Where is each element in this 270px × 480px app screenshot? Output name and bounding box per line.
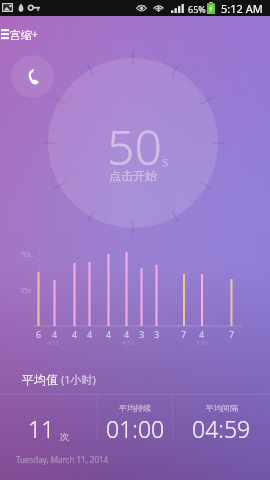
staticText: Tuesday, March 11, 2014 [16,454,109,465]
button[interactable]: Menu [0,25,10,43]
staticText: 3 [139,328,145,340]
staticText: 50 [107,114,162,179]
staticText: 点击开始 [109,168,157,183]
staticText: 4 [72,328,78,340]
staticText: 7 [181,328,187,340]
staticText: 6 [36,328,42,340]
button[interactable]: 11 [0,395,97,440]
staticText: 7 [229,328,235,340]
staticText: 宫缩 [10,28,32,42]
staticText: 平均值 [22,372,58,387]
staticText: 01:00 [106,413,165,444]
staticText: 4 [106,328,112,340]
staticText: 4:52 [122,339,134,347]
button[interactable]: Call [11,55,54,98]
staticText: 平均持续 [119,403,151,413]
staticText: 平均间隔 [206,403,238,413]
staticText: 5:12 AM [221,1,263,16]
staticText: 4 [199,328,205,340]
staticText: 4 [87,328,93,340]
staticText: 4 [124,328,130,340]
button[interactable]: 平均间隔 [173,395,270,440]
staticText: 04:59 [192,413,251,444]
staticText: 65% [188,3,206,15]
staticText: 11 [28,413,55,444]
staticText: + [32,27,38,41]
staticText: (1小时) [61,372,96,387]
staticText: s [162,152,169,170]
staticText: 次 [60,431,69,442]
button[interactable]: 50 [48,58,218,228]
staticText: 4:52 [47,339,59,347]
staticText: 35s [20,286,32,296]
staticText: 5:10 [196,339,208,347]
staticText: 70s [20,250,32,260]
staticText: 4 [52,328,58,340]
button[interactable]: 平均持续 [98,395,172,440]
staticText: 3 [154,328,160,340]
